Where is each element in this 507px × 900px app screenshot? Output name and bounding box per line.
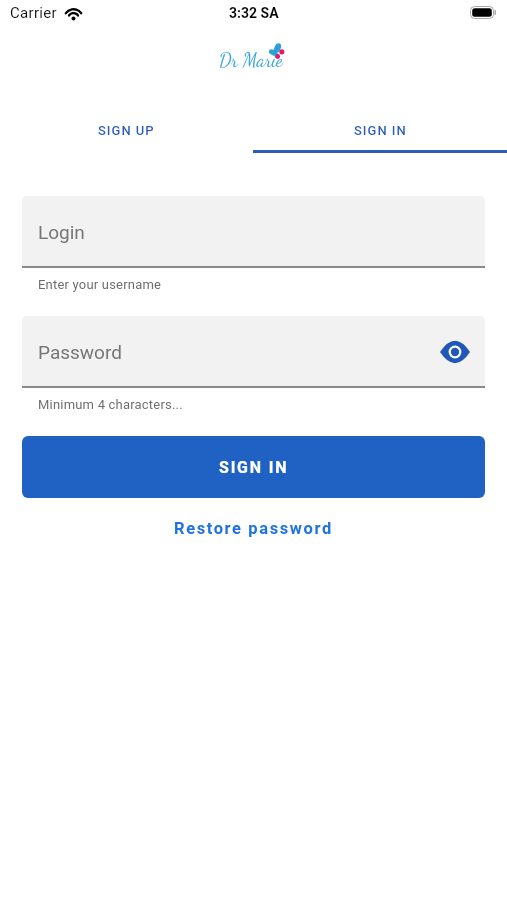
button[interactable]: SIGN UP [0,107,253,153]
staticText: SIGN UP [98,123,155,138]
button[interactable]: Restore password [174,519,333,538]
button[interactable]: SIGN IN [22,436,485,498]
staticText: SIGN IN [219,458,289,477]
staticText: Enter your username [38,277,162,292]
staticText: 3:32 SA [229,5,279,21]
staticText: Dr Marie [219,49,283,72]
staticText: Carrier [10,4,57,22]
button[interactable]: SIGN IN [253,107,507,153]
staticText: Login [38,221,85,243]
button[interactable]: Login [22,196,485,268]
button[interactable]: Password [22,316,485,388]
staticText: Password [38,341,122,363]
staticText: Minimum 4 characters... [38,397,183,412]
staticText: SIGN IN [354,123,407,138]
